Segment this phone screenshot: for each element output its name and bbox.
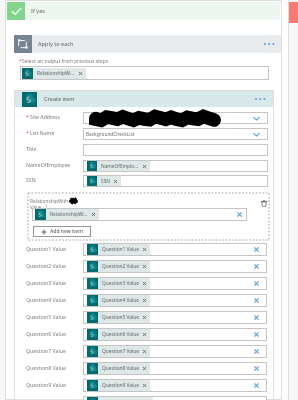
staticText: Question1 Value: [26, 245, 66, 252]
staticText: Question4 Value: [102, 297, 139, 304]
button[interactable]: Apply to each: [14, 35, 281, 53]
button[interactable]: Clear value: [253, 297, 260, 304]
staticText: Create item: [44, 95, 75, 103]
staticText: SSN: [26, 176, 36, 183]
button[interactable]: Apply to each menu: [263, 39, 277, 49]
staticText: Question6 Value: [102, 331, 139, 338]
button[interactable]: Delete: [260, 199, 268, 207]
staticText: Site Address: [30, 113, 60, 120]
button[interactable]: RelationshipWi...: [32, 208, 247, 221]
button[interactable]: Clear value: [253, 263, 260, 270]
button[interactable]: Clear value: [253, 246, 260, 253]
staticText: Question5 Value: [102, 314, 139, 321]
staticText: Question1 Value: [102, 246, 139, 253]
button[interactable]: If yes: [7, 2, 280, 20]
staticText: Question3 Value: [102, 280, 139, 287]
button[interactable]: Remove token: [113, 179, 118, 184]
button[interactable]: Question6 Value: [83, 328, 267, 341]
staticText: Question9 Value: [102, 382, 139, 389]
button[interactable]: Open Site Address: [83, 112, 268, 124]
button[interactable]: Remove token: [142, 164, 147, 169]
button[interactable]: Open List Name: [252, 130, 261, 139]
staticText: Question7 Value: [102, 348, 139, 355]
staticText: List Name: [30, 129, 55, 136]
button[interactable]: Question7 Value: [83, 345, 267, 358]
staticText: Add new item: [50, 228, 83, 235]
button[interactable]: Remove token: [142, 264, 147, 269]
staticText: Apply to each: [38, 40, 74, 48]
staticText: Question5 Value: [26, 313, 66, 320]
button[interactable]: Clear value: [253, 314, 260, 321]
staticText: RelationshipWith: [30, 198, 69, 205]
button[interactable]: Remove token: [142, 315, 147, 320]
button[interactable]: Remove token: [78, 71, 83, 76]
staticText: *: [19, 58, 22, 65]
staticText: RelationshipWi...: [50, 211, 88, 218]
staticText: Question3 Value: [26, 279, 66, 286]
staticText: *: [26, 113, 29, 120]
button[interactable]: Question9 Value: [83, 379, 267, 392]
button[interactable]: Question4 Value: [83, 294, 267, 307]
staticText: BackgroundCheckList: [86, 131, 135, 138]
button[interactable]: Clear value: [253, 280, 260, 287]
button[interactable]: Clear value: [253, 348, 260, 355]
button[interactable]: Remove token: [142, 383, 147, 388]
staticText: *: [26, 129, 29, 136]
staticText: SSN: [101, 178, 110, 185]
staticText: Question4 Value: [26, 296, 66, 303]
button[interactable]: Open Site Address: [252, 114, 261, 123]
button[interactable]: Clear value: [253, 365, 260, 372]
staticText: Value - 1: [30, 204, 48, 210]
button[interactable]: Add new item: [33, 226, 91, 237]
staticText: RelationshipWi...: [37, 70, 75, 77]
button[interactable]: Remove token: [142, 281, 147, 286]
staticText: Question10 Value: [26, 398, 69, 400]
button[interactable]: Clear value: [236, 211, 243, 218]
button[interactable]: Question3 Value: [83, 277, 267, 290]
staticText: Question2 Value: [26, 262, 66, 269]
button[interactable]: Question8 Value: [83, 362, 267, 375]
button[interactable]: Question5 Value: [83, 311, 267, 324]
button[interactable]: Remove token: [91, 212, 96, 217]
staticText: Title: [26, 145, 37, 152]
staticText: Question8 Value: [26, 364, 66, 371]
button[interactable]: Create item menu: [254, 94, 268, 104]
staticText: Question8 Value: [102, 365, 139, 372]
staticText: Question9 Value: [26, 381, 66, 388]
button[interactable]: Remove token: [142, 247, 147, 252]
button[interactable]: Clear value: [253, 382, 260, 389]
button[interactable]: Remove token: [142, 349, 147, 354]
staticText: Question6 Value: [26, 330, 66, 337]
button[interactable]: Create item: [15, 91, 273, 107]
button[interactable]: Remove token: [142, 366, 147, 371]
button[interactable]: Clear value: [253, 331, 260, 338]
button[interactable]: SSN: [83, 175, 268, 187]
staticText: NameOfEmployee: [26, 161, 71, 168]
staticText: Question7 Value: [26, 347, 66, 354]
staticText: Select an output from previous steps: [22, 58, 109, 65]
button[interactable]: Remove token: [142, 298, 147, 303]
button[interactable]: NameOfEmplo...: [83, 160, 268, 172]
staticText: Question2 Value: [102, 263, 139, 270]
button[interactable]: BackgroundCheckList: [83, 128, 268, 140]
button[interactable]: Question2 Value: [83, 260, 267, 273]
button[interactable]: [83, 144, 268, 156]
button[interactable]: Remove token: [142, 332, 147, 337]
button[interactable]: Question1 Value: [83, 243, 267, 256]
button[interactable]: Question10 Value: [83, 396, 267, 400]
button[interactable]: RelationshipWi...: [20, 66, 269, 80]
staticText: NameOfEmplo...: [101, 163, 139, 170]
staticText: If yes: [31, 7, 45, 15]
